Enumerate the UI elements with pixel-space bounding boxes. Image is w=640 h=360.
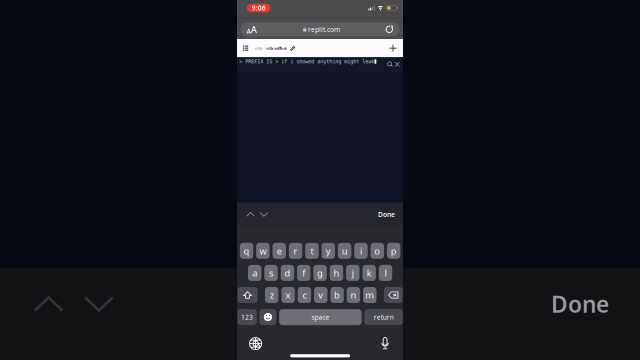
button[interactable]: Page settings [246,23,259,35]
button[interactable]: Previous field [245,209,255,220]
staticText: d [284,267,290,279]
staticText: g [317,267,323,279]
button[interactable]: Shift [237,287,258,303]
staticText: c [302,289,306,301]
staticText: space [311,313,329,322]
button[interactable]: r [289,243,302,259]
staticText: n0x selfbot [266,45,287,51]
button[interactable]: c [298,287,311,303]
staticText: 123 [241,313,253,322]
staticText: 9:06 [252,3,266,12]
staticText: e [277,245,282,257]
button[interactable]: x [281,287,295,303]
staticText: r [294,245,298,257]
staticText: n [350,289,356,301]
staticText: m [365,289,374,301]
staticText: q [243,245,249,257]
button[interactable]: space [279,309,362,325]
button[interactable]: Close console [394,61,401,68]
button[interactable]: Emoji [259,309,276,325]
staticText: / [264,45,265,51]
staticText: z [270,289,274,301]
staticText: l [384,267,386,279]
button[interactable]: d [281,265,294,281]
button[interactable]: Done [551,282,609,326]
button[interactable]: t [305,243,319,259]
button[interactable]: Switch keyboard [248,336,264,352]
staticText: j [352,267,354,279]
button[interactable]: return [364,309,403,325]
staticText: o [374,245,380,257]
button[interactable]: u [338,243,351,259]
staticText: s [269,267,273,279]
button[interactable]: Previous field [34,282,64,326]
button[interactable]: z [265,287,278,303]
button[interactable]: j [346,265,359,281]
button[interactable]: k [362,265,376,281]
staticText: b [334,289,340,301]
button[interactable]: Dictate [377,336,393,352]
staticText: w [259,245,266,257]
staticText: > PREFIX IS > if i showed anything might… [239,58,374,65]
button[interactable]: e [272,243,286,259]
button[interactable]: l [379,265,392,281]
button[interactable]: o [371,243,384,259]
staticText: Done [378,210,395,219]
staticText: Done [551,289,609,319]
button[interactable]: a [248,265,261,281]
staticText: u [342,245,348,257]
button[interactable]: Delete [384,287,403,303]
button[interactable]: Next field [84,282,114,326]
staticText: A [251,23,257,36]
button[interactable]: w [256,243,270,259]
button[interactable]: Menu [242,43,249,53]
staticText: x [286,289,291,301]
button[interactable]: n [347,287,360,303]
button[interactable]: g [313,265,327,281]
staticText: t [310,245,313,257]
button[interactable]: m [363,287,376,303]
staticText: y [326,245,331,257]
staticText: n0x [255,45,262,51]
button[interactable]: New tab [388,43,398,53]
staticText: replit.com [308,25,340,34]
button[interactable]: q [240,243,253,259]
button[interactable]: p [387,243,400,259]
button[interactable]: f [297,265,310,281]
button[interactable]: i [354,243,368,259]
button[interactable]: v [314,287,327,303]
button[interactable]: Search console [387,61,394,68]
staticText: v [318,289,323,301]
staticText: k [367,267,372,279]
button[interactable]: Done [378,209,395,220]
staticText: A [246,27,250,36]
button[interactable]: b [330,287,344,303]
staticText: f [302,267,305,279]
staticText: return [374,313,394,322]
button[interactable]: Next field [259,209,269,220]
staticText: a [252,267,257,279]
button[interactable]: s [264,265,278,281]
button[interactable]: y [322,243,335,259]
button[interactable]: 123 [237,309,257,325]
button[interactable]: h [330,265,343,281]
staticText: h [333,267,339,279]
staticText: i [360,245,362,257]
button[interactable]: Reload [383,23,395,35]
staticText: p [391,245,397,257]
